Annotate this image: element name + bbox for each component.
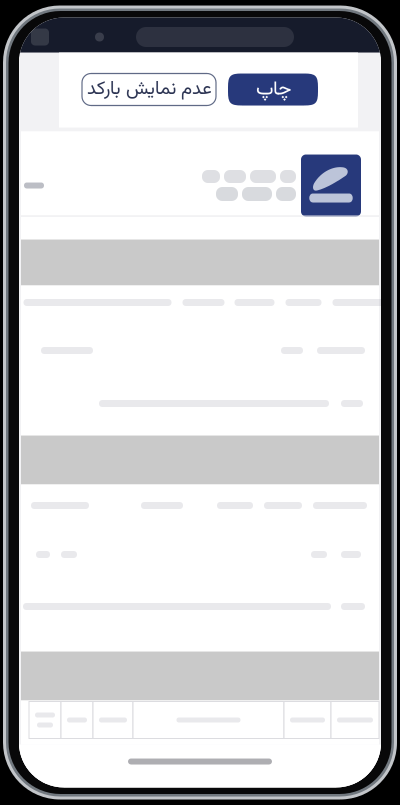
staticText: چاپ [255,74,290,105]
staticText: عدم نمایش بارکد [86,75,211,104]
button[interactable]: عدم نمایش بارکد [82,73,216,105]
button[interactable]: چاپ [228,73,318,105]
